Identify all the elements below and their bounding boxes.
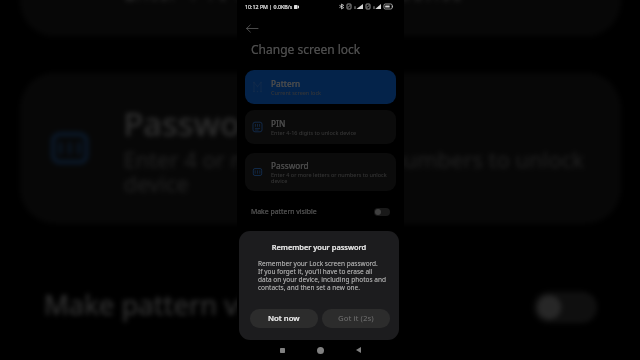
staticText: Pattern: [271, 78, 301, 89]
staticText: Change screen lock: [251, 41, 361, 57]
staticText: Enter 4 or more letters or numbers to un…: [123, 144, 609, 200]
button[interactable]: Back: [243, 19, 261, 37]
staticText: Not now: [268, 313, 300, 324]
button[interactable]: Make pattern visible: [237, 201, 404, 222]
staticText: 10:12 PM | 0.0KB/s: [245, 3, 293, 10]
staticText: Make pattern visible: [44, 287, 307, 323]
staticText: Remember your password: [239, 242, 399, 252]
button[interactable]: Got it (2s): [322, 309, 390, 328]
button[interactable]: Recents: [273, 340, 291, 360]
staticText: Got it (2s): [338, 313, 374, 324]
staticText: Enter 4-16 digits to unlock device: [271, 129, 357, 136]
staticText: Password: [271, 160, 309, 171]
staticText: PIN: [271, 118, 286, 129]
button[interactable]: Not now: [250, 309, 318, 328]
staticText: Enter 4 or more letters or numbers to un…: [271, 171, 393, 185]
button[interactable]: Make pattern visible: [0, 264, 640, 347]
staticText: Remember your Lock screen password. If y…: [258, 259, 390, 292]
staticText: Password: [123, 100, 275, 144]
staticText: Enter 4-16 digits to unlock device: [123, 0, 466, 5]
button[interactable]: PIN: [245, 110, 396, 144]
staticText: Make pattern visible: [251, 207, 317, 216]
button[interactable]: PIN: [20, 0, 621, 37]
button[interactable]: Password: [20, 72, 621, 224]
button[interactable]: Password: [245, 153, 396, 191]
staticText: Current screen lock: [271, 89, 322, 96]
button[interactable]: Home: [311, 340, 329, 360]
button[interactable]: Pattern: [245, 70, 396, 104]
button[interactable]: Back: [349, 340, 367, 360]
